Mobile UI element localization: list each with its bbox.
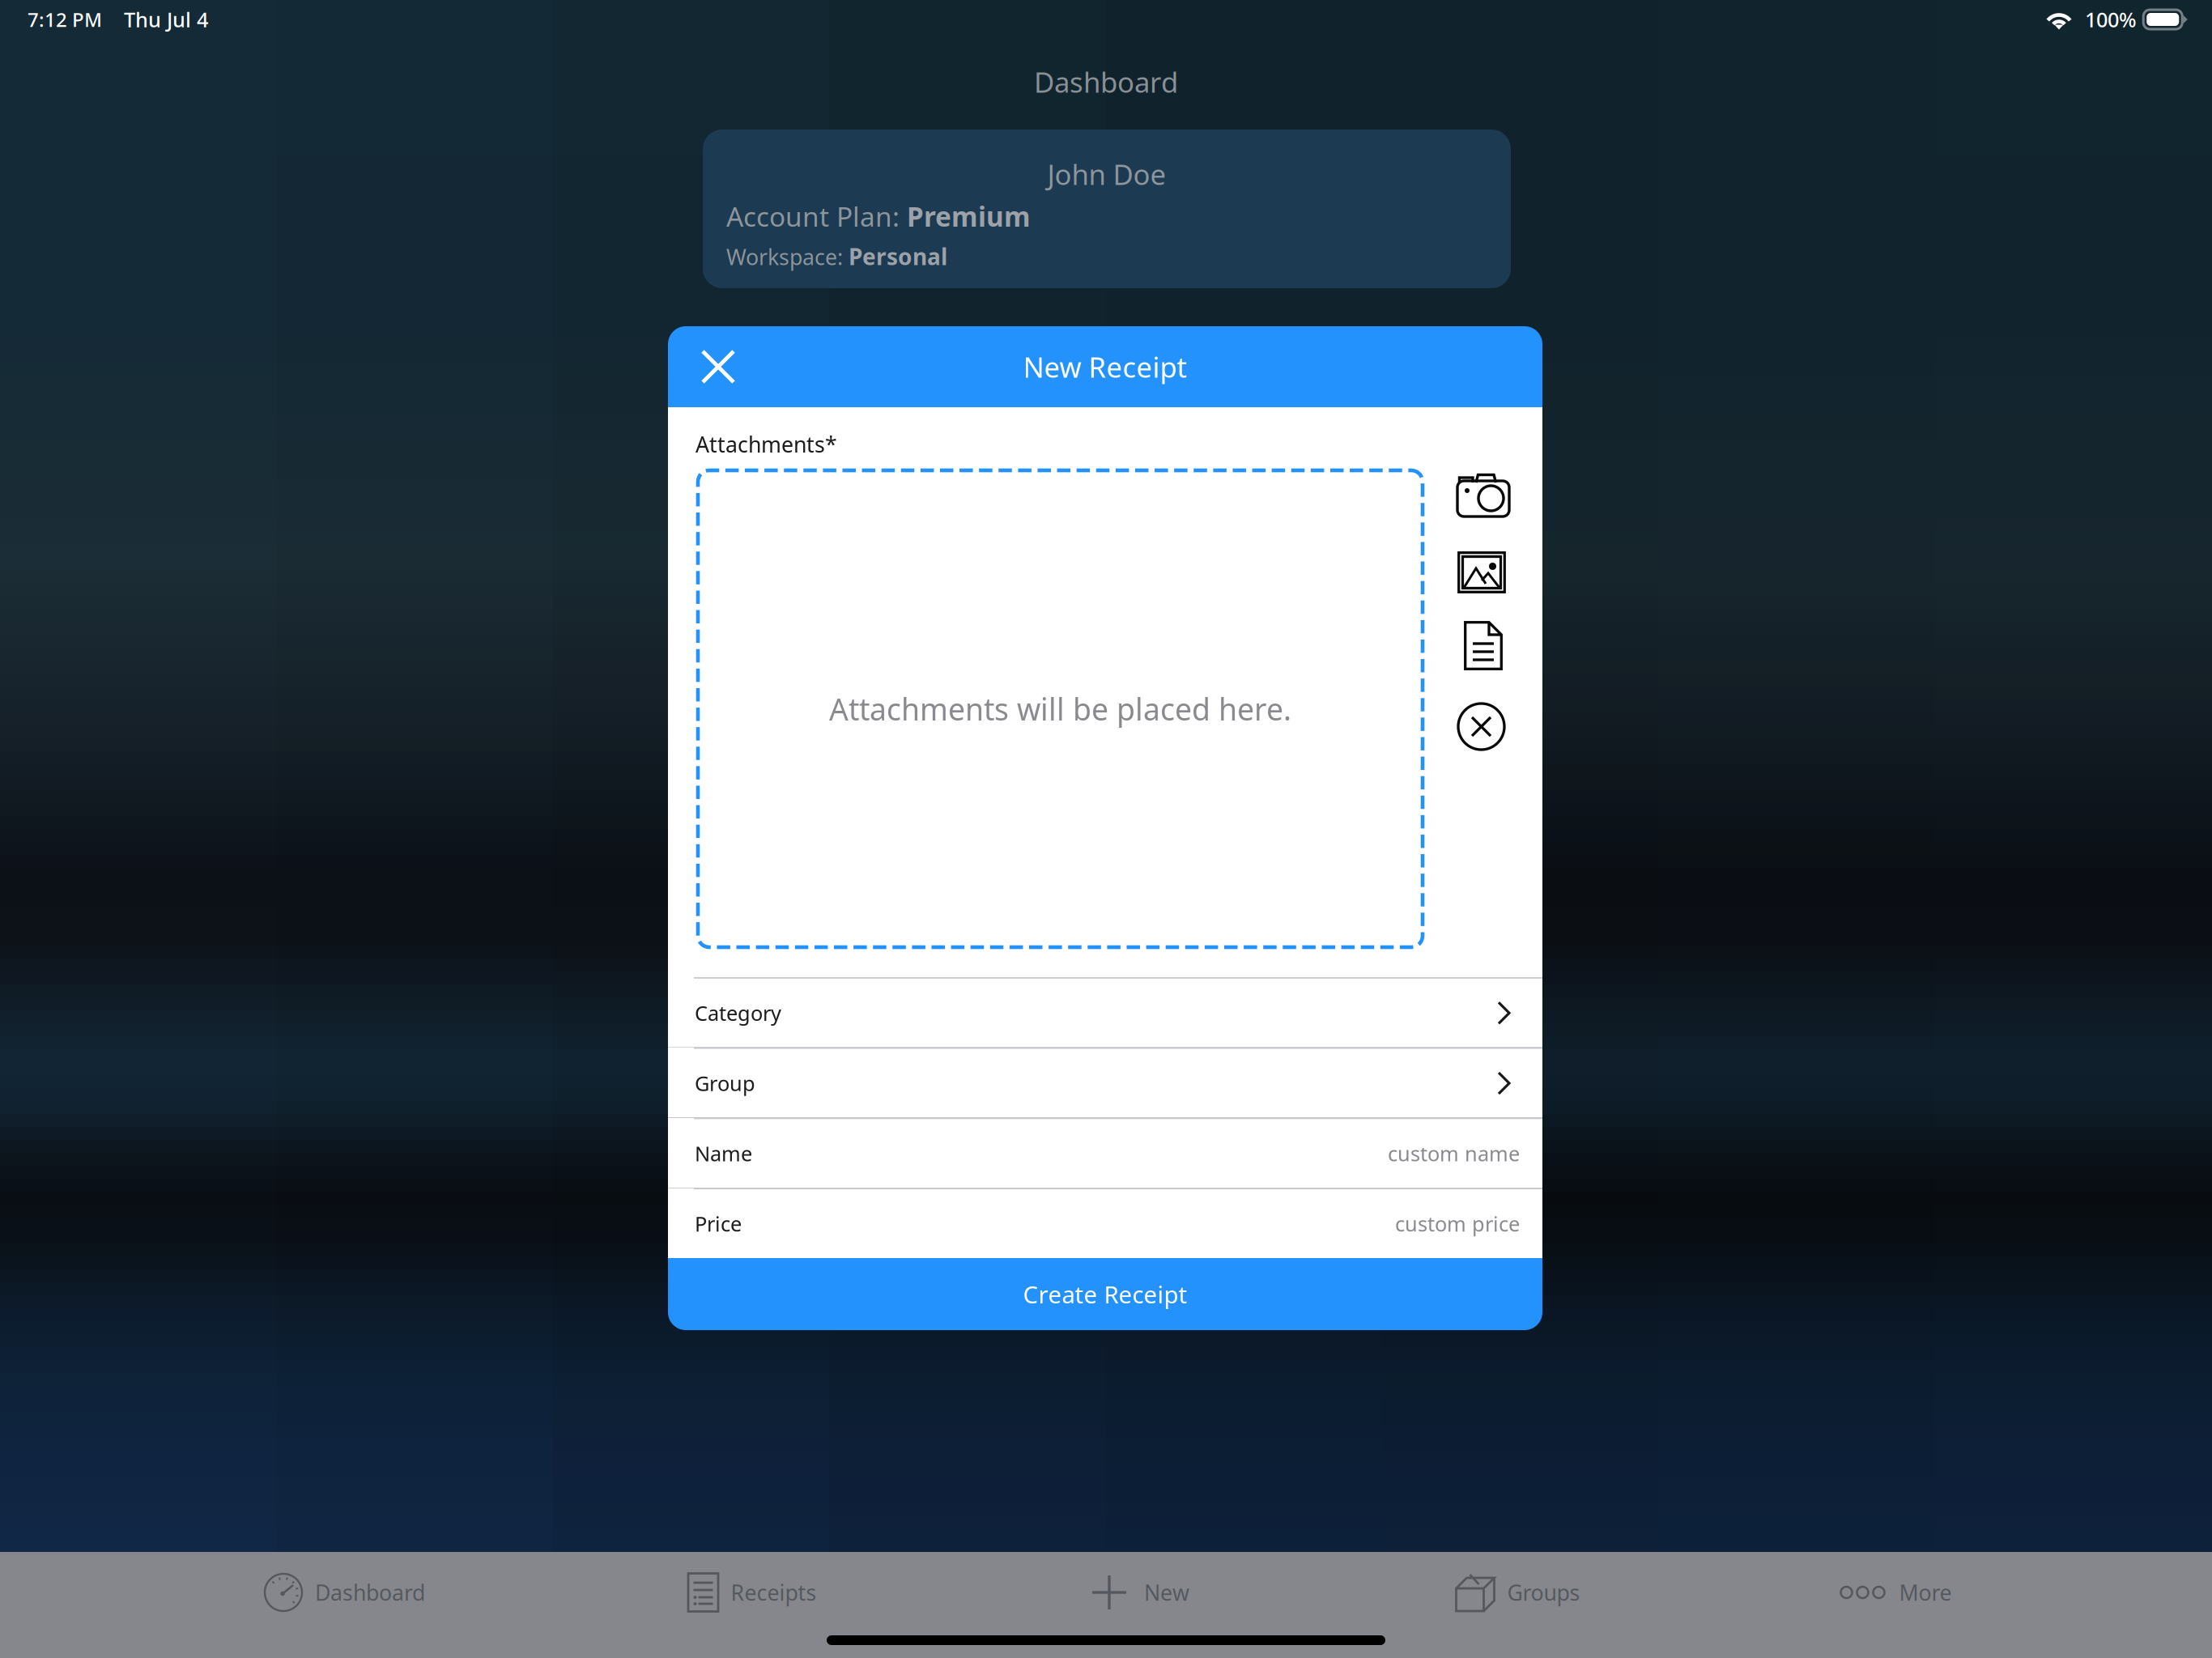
staticText: Attachments will be placed here. (829, 689, 1291, 729)
staticText: 7:12 PM (28, 7, 102, 32)
button[interactable]: Close (684, 333, 752, 401)
staticText: Group (695, 1070, 755, 1097)
staticText: custom price (1395, 1210, 1520, 1237)
button[interactable]: Groups (1329, 1552, 1705, 1633)
staticText: Name (695, 1140, 752, 1167)
button[interactable]: New (951, 1552, 1329, 1633)
button[interactable]: Choose photo (1457, 551, 1506, 593)
staticText: New Receipt (1023, 348, 1187, 385)
staticText: Category (695, 999, 781, 1027)
button[interactable]: Remove attachments (1458, 704, 1504, 750)
button[interactable]: More (1705, 1552, 2086, 1633)
button[interactable]: Receipts (552, 1552, 951, 1633)
button[interactable]: Create Receipt (668, 1258, 1542, 1330)
staticText: Premium (907, 198, 1031, 234)
staticText: Dashboard (1034, 63, 1178, 100)
button[interactable]: Attach document (1464, 621, 1503, 670)
button[interactable]: Name (668, 1118, 1542, 1188)
staticText: Groups (1507, 1578, 1580, 1607)
staticText: John Doe (1047, 155, 1166, 193)
staticText: Attachments* (696, 430, 837, 459)
button[interactable]: Price (668, 1188, 1542, 1258)
button[interactable]: Group (668, 1047, 1542, 1118)
staticText: Dashboard (315, 1578, 425, 1607)
staticText: Personal (849, 241, 947, 271)
staticText: custom name (1388, 1140, 1520, 1167)
button[interactable]: Category (668, 977, 1542, 1047)
button[interactable]: Take photo (1456, 471, 1511, 518)
button[interactable]: Dashboard (136, 1552, 552, 1633)
staticText: Receipts (731, 1578, 817, 1607)
staticText: New (1144, 1578, 1189, 1607)
staticText: Price (695, 1210, 742, 1237)
staticText: Workspace: (726, 242, 849, 271)
staticText: Account Plan: (726, 198, 907, 234)
staticText: Create Receipt (1023, 1278, 1187, 1310)
staticText: 100% (2085, 6, 2137, 33)
staticText: Thu Jul 4 (124, 6, 208, 33)
staticText: More (1899, 1578, 1952, 1607)
